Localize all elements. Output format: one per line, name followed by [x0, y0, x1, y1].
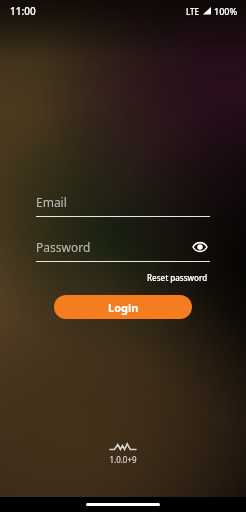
staticText: 11:00	[10, 4, 36, 18]
staticText: Email	[36, 194, 67, 210]
staticText: 100%	[214, 5, 238, 17]
button[interactable]: Password	[36, 235, 210, 259]
staticText: Password	[36, 239, 91, 255]
button[interactable]: Show password	[190, 237, 210, 257]
staticText: 1.0.0+9	[109, 454, 137, 465]
button[interactable]: Email	[36, 190, 210, 214]
button[interactable]: Reset password	[145, 270, 210, 285]
staticText: LTE	[186, 6, 200, 17]
staticText: Login	[108, 300, 139, 315]
staticText: Reset password	[147, 272, 208, 283]
button[interactable]: Login	[54, 295, 192, 319]
